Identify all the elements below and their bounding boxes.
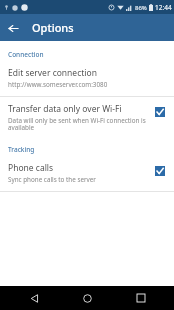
staticText: Data will only be sent when Wi-Fi connec… [8,116,147,132]
staticText: http://www.someserver.com:3080 [8,80,108,89]
staticText: Options [32,20,74,35]
button[interactable]: Toggle Transfer data only over Wi-Fi [153,105,167,119]
staticText: Transfer data only over Wi-Fi [8,103,122,115]
staticText: Sync phone calls to the server [8,175,96,184]
staticText: Edit server connection [8,67,97,79]
staticText: Phone calls [8,162,54,174]
button[interactable]: Back [0,15,26,41]
button[interactable]: Home [67,286,107,310]
button[interactable]: Transfer data only over Wi-Fi [0,101,174,134]
button[interactable]: Recent apps [121,286,161,310]
staticText: 12:44 [155,3,172,12]
button[interactable]: Edit server connection [0,65,174,91]
staticText: Tracking [8,145,35,154]
staticText: Connection [8,50,44,59]
button[interactable]: Phone calls [0,160,174,186]
staticText: 86% [135,4,147,12]
button[interactable]: Back [14,286,54,310]
button[interactable]: Toggle Phone calls [153,164,167,178]
